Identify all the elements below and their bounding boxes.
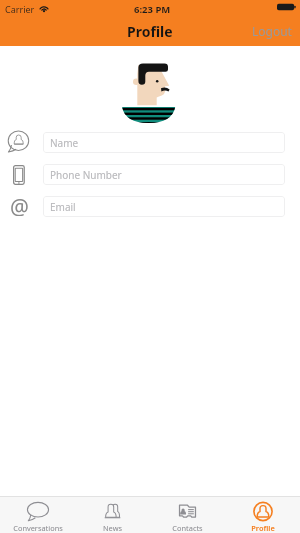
button[interactable]: Email [43,196,285,217]
staticText: Phone Number [50,168,122,182]
staticText: Carrier [5,3,35,15]
staticText: Conversations [13,523,63,533]
staticText: 6:23 PM [134,3,171,16]
button[interactable]: Profile [225,497,300,533]
staticText: News [103,523,122,533]
staticText: Profile [127,22,173,41]
staticText: Logout [252,23,292,39]
staticText: Name [50,136,79,150]
staticText: Email [50,200,76,214]
button[interactable]: Conversations [0,497,75,533]
button[interactable]: Name [43,132,285,153]
button[interactable]: Phone Number [43,164,285,185]
button[interactable]: Logout [243,18,300,44]
staticText: Profile [251,523,275,533]
staticText: Contacts [172,523,203,533]
staticText: @ [10,193,29,216]
button[interactable]: News [75,497,150,533]
button[interactable]: Contacts [150,497,225,533]
